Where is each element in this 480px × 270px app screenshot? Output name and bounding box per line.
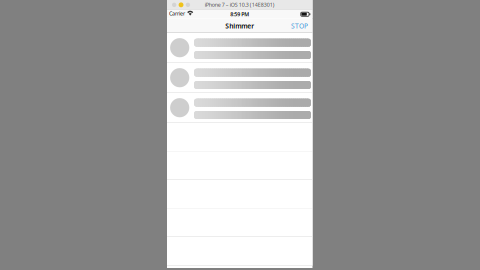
- button[interactable]: Close window: [172, 3, 176, 7]
- button[interactable]: STOP: [289, 19, 310, 33]
- staticText: 8:59 PM: [230, 11, 249, 18]
- button[interactable]: Zoom window: [186, 3, 190, 7]
- button[interactable]: Loading item: [167, 63, 312, 93]
- button[interactable]: Loading item: [167, 33, 312, 63]
- staticText: iPhone 7 – iOS 10.3 (14E8301): [205, 1, 275, 8]
- staticText: STOP: [291, 21, 308, 30]
- staticText: Shimmer: [225, 21, 254, 30]
- button[interactable]: Loading item: [167, 93, 312, 123]
- button[interactable]: Minimize window: [179, 2, 183, 7]
- staticText: Carrier: [169, 10, 185, 17]
